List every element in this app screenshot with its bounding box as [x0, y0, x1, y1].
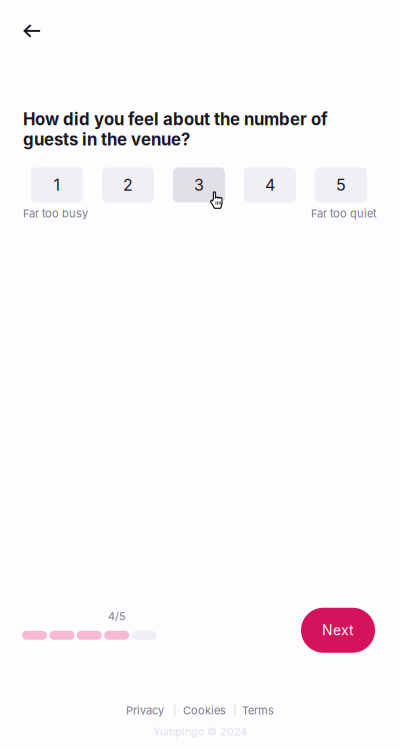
staticText: Terms [242, 704, 274, 717]
staticText: 3 [194, 175, 204, 195]
button[interactable]: 1 [31, 167, 83, 202]
staticText: Yumpingo © 2024 [153, 725, 247, 738]
button[interactable]: Next [301, 608, 375, 653]
staticText: 2 [123, 175, 133, 195]
button[interactable]: 4 [244, 167, 296, 202]
staticText: 4/5 [108, 610, 126, 623]
button[interactable]: 3 [173, 167, 225, 202]
staticText: Far too busy [23, 207, 88, 220]
staticText: | [233, 704, 237, 717]
staticText: Privacy [126, 704, 164, 717]
button[interactable]: Terms [237, 704, 274, 717]
button[interactable]: Back [15, 14, 49, 48]
button[interactable]: 2 [102, 167, 154, 202]
staticText: Far too quiet [311, 207, 377, 220]
button[interactable]: Privacy [126, 704, 173, 717]
staticText: 5 [336, 175, 346, 195]
staticText: Cookies [183, 704, 226, 717]
staticText: 1 [53, 175, 60, 195]
button[interactable]: Cookies [177, 704, 233, 717]
staticText: 4 [265, 175, 275, 195]
staticText: How did you feel about the number of gue… [23, 109, 328, 149]
staticText: | [173, 704, 177, 717]
button[interactable]: 5 [315, 167, 367, 202]
staticText: Next [322, 622, 354, 639]
